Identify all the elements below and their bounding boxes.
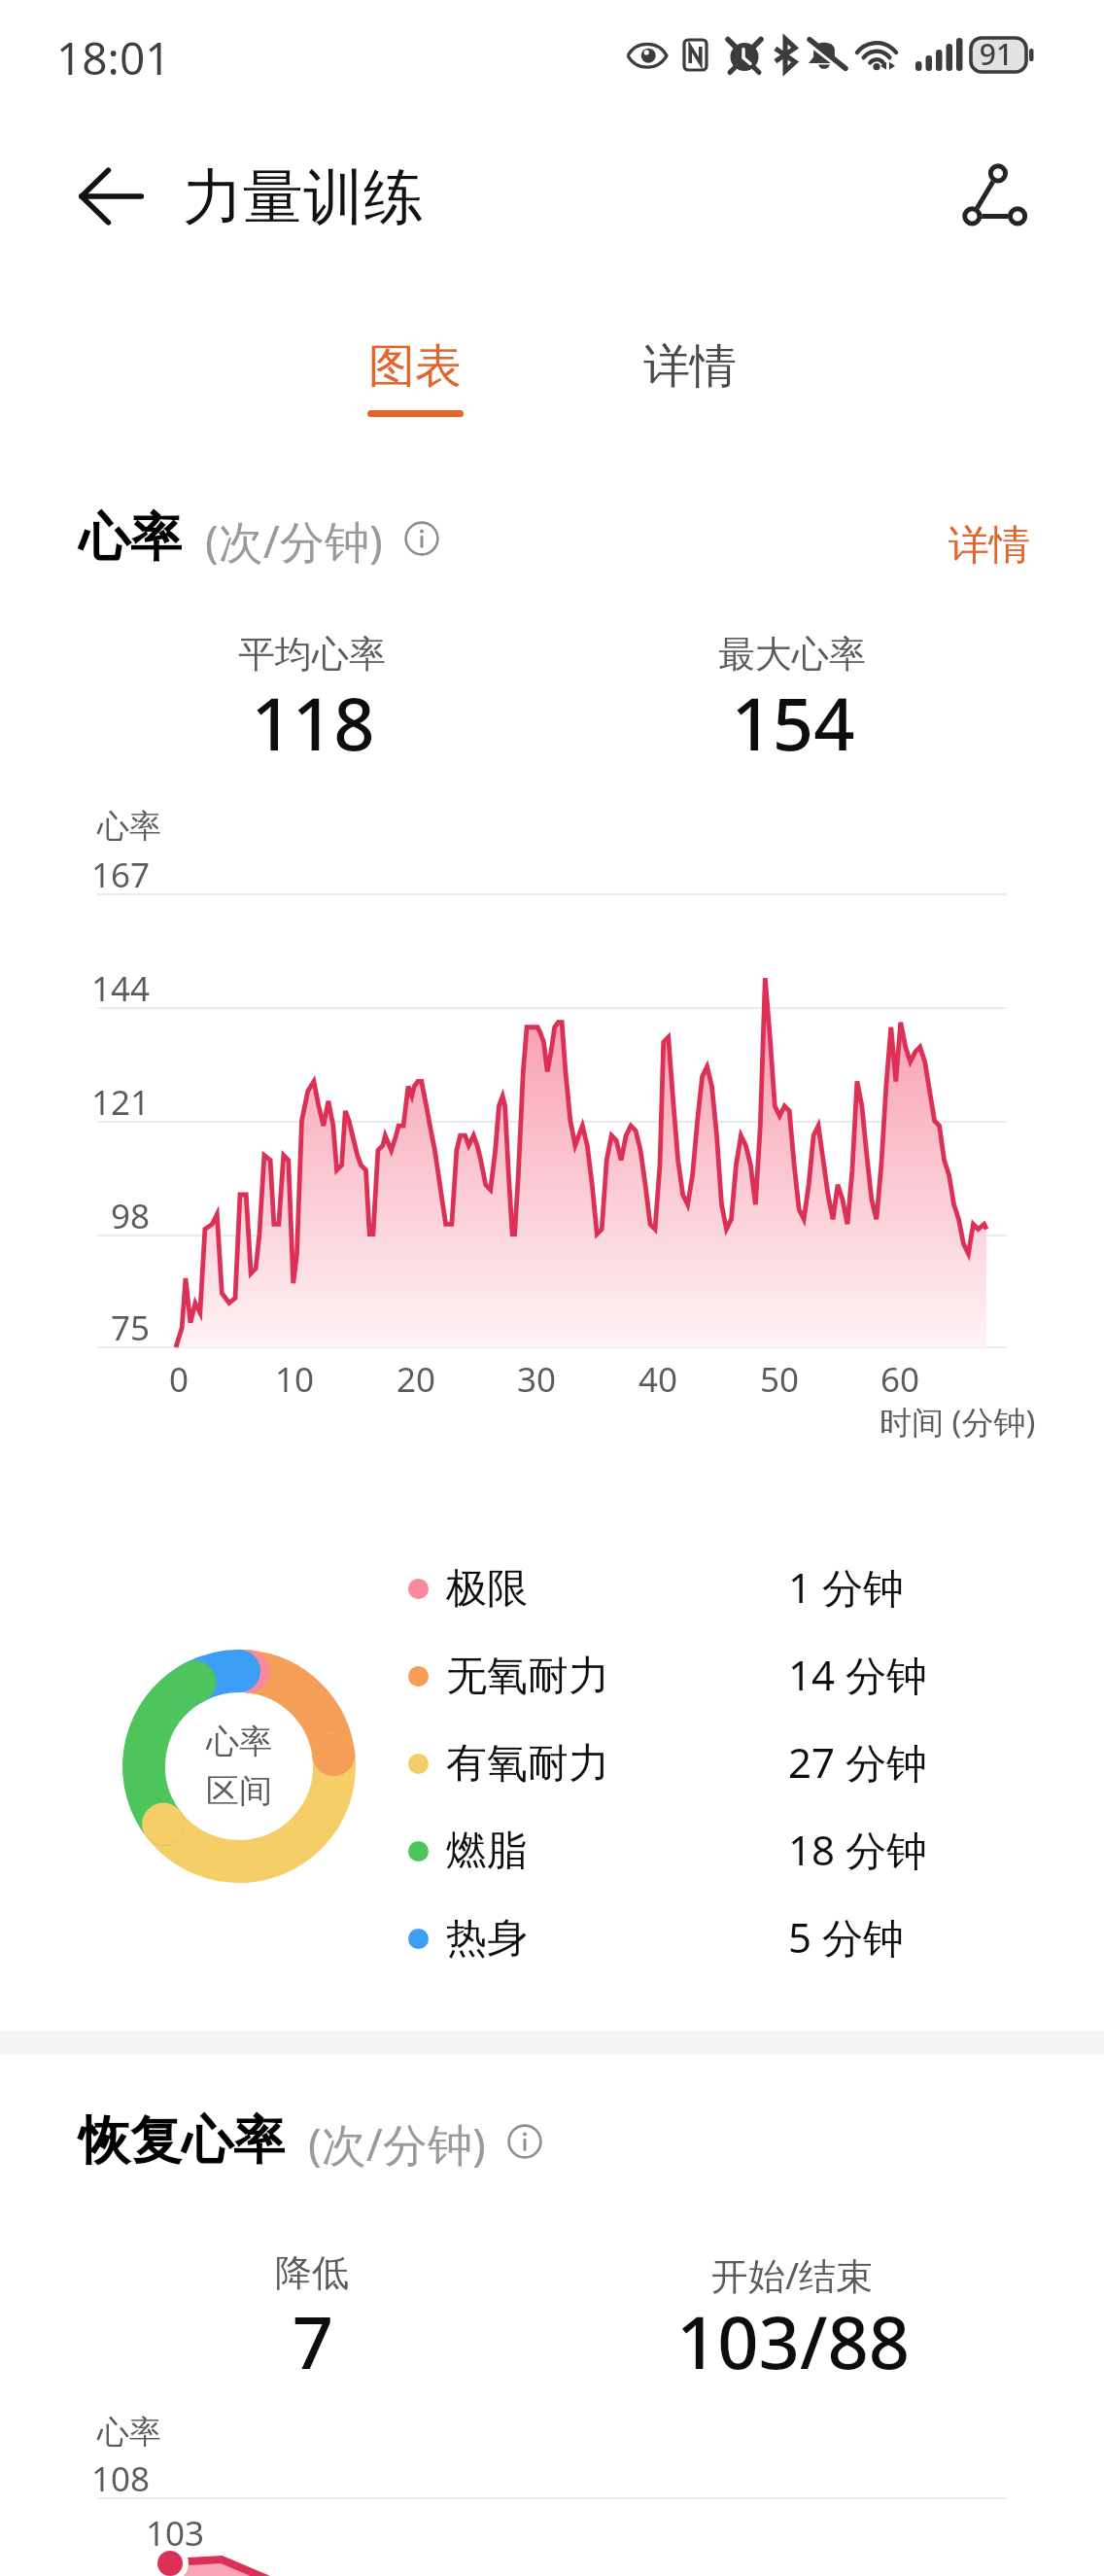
staticText: 5 分钟 xyxy=(788,1909,904,1965)
staticText: 20 xyxy=(124,1356,707,1403)
staticText: 心率 xyxy=(79,505,182,571)
staticText: 降低 xyxy=(20,2249,604,2296)
staticText: 心率 xyxy=(97,2412,161,2453)
button[interactable]: 有氧耐力 xyxy=(389,1720,952,1807)
staticText: 40 xyxy=(366,1356,949,1403)
staticText: 144 xyxy=(0,965,150,1012)
staticText: (次/分钟) xyxy=(308,2113,486,2175)
staticText: 14 分钟 xyxy=(788,1647,927,1702)
staticText: 有氧耐力 xyxy=(446,1738,609,1790)
staticText: 详情 xyxy=(643,337,737,396)
button[interactable]: 说明 xyxy=(398,515,445,562)
staticText: (次/分钟) xyxy=(205,510,383,572)
staticText: 103 xyxy=(146,2510,205,2557)
staticText: 91 xyxy=(705,34,1104,74)
button[interactable]: 详情 xyxy=(928,505,1050,585)
staticText: 无氧耐力 xyxy=(446,1651,609,1702)
button[interactable]: 图表 xyxy=(337,309,493,426)
staticText: 75 xyxy=(0,1305,150,1351)
staticText: 燃脂 xyxy=(446,1826,528,1877)
staticText: 167 xyxy=(0,852,150,898)
staticText: 154 xyxy=(501,674,1085,772)
staticText: 50 xyxy=(488,1356,1071,1403)
staticText: 时间 (分钟) xyxy=(880,1400,1036,1444)
staticText: 极限 xyxy=(446,1563,528,1615)
staticText: 103/88 xyxy=(501,2292,1085,2390)
staticText: 10 xyxy=(3,1356,586,1403)
staticText: 心率 xyxy=(97,806,161,847)
staticText: 心率 xyxy=(206,1721,272,1762)
staticText: 最大心率 xyxy=(500,631,1084,678)
staticText: 121 xyxy=(0,1079,150,1126)
staticText: 图表 xyxy=(368,337,462,396)
staticText: 0 xyxy=(0,1356,470,1403)
staticText: 1 分钟 xyxy=(788,1559,904,1615)
staticText: 区间 xyxy=(206,1770,272,1812)
staticText: 30 xyxy=(245,1356,828,1403)
button[interactable]: 热身 xyxy=(389,1895,952,1982)
staticText: 98 xyxy=(0,1193,150,1239)
staticText: 开始/结束 xyxy=(500,2249,1084,2300)
staticText: 118 xyxy=(21,674,604,772)
staticText: 平均心率 xyxy=(20,631,604,678)
staticText: 60 xyxy=(608,1356,1104,1403)
button[interactable]: 返回 xyxy=(64,150,157,243)
button[interactable]: 燃脂 xyxy=(389,1807,952,1895)
staticText: 力量训练 xyxy=(183,159,424,235)
button[interactable]: 心率 xyxy=(122,1650,356,1883)
staticText: 108 xyxy=(0,2455,150,2502)
button[interactable]: 无氧耐力 xyxy=(389,1632,952,1720)
staticText: 详情 xyxy=(949,520,1030,572)
button[interactable]: 极限 xyxy=(389,1545,952,1632)
staticText: 18:01 xyxy=(56,27,171,88)
staticText: 热身 xyxy=(446,1913,528,1965)
staticText: 恢复心率 xyxy=(79,2108,285,2174)
button[interactable]: 分享 xyxy=(947,148,1040,241)
staticText: 7 xyxy=(21,2292,604,2390)
button[interactable]: 说明 xyxy=(501,2118,548,2165)
staticText: 27 分钟 xyxy=(788,1734,927,1790)
button[interactable]: 详情 xyxy=(612,309,768,406)
staticText: 18 分钟 xyxy=(788,1822,927,1877)
